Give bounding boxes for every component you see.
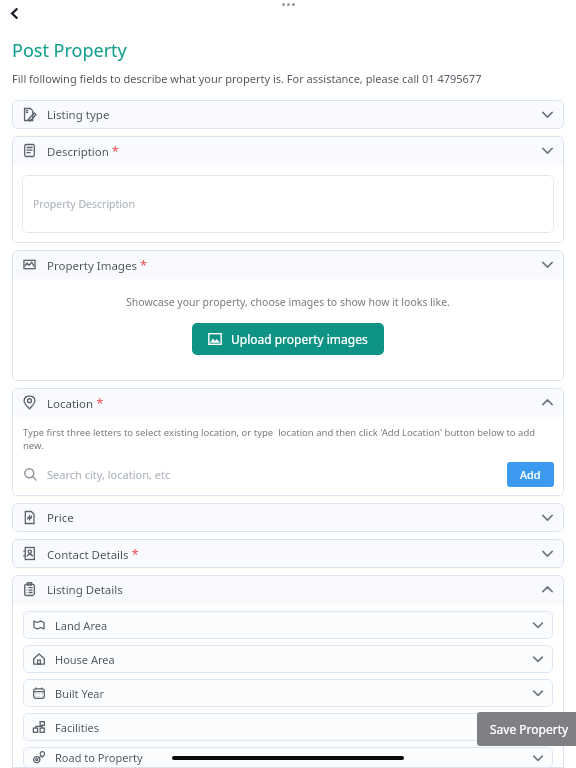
staticText: Property Images *: [47, 256, 148, 274]
button[interactable]: Save Property: [477, 712, 576, 746]
staticText: Contact Details *: [47, 545, 139, 563]
staticText: Description *: [47, 142, 120, 160]
button[interactable]: Add: [507, 462, 554, 487]
button[interactable]: Land Area: [23, 611, 553, 639]
button[interactable]: Property Images *: [12, 250, 564, 279]
staticText: Add: [520, 467, 541, 482]
staticText: Price: [47, 510, 74, 526]
button[interactable]: Price: [12, 503, 564, 532]
button[interactable]: Back: [0, 0, 28, 26]
staticText: Post Property: [12, 38, 127, 63]
button[interactable]: Built Year: [23, 679, 553, 707]
staticText: Location *: [47, 394, 104, 412]
staticText: Road to Property: [55, 750, 143, 765]
staticText: Listing Details: [47, 582, 123, 598]
staticText: Fill following fields to describe what y…: [12, 71, 482, 86]
button[interactable]: More options: [282, 3, 295, 6]
button[interactable]: Facilities: [23, 713, 553, 741]
staticText: Land Area: [55, 618, 108, 633]
button[interactable]: Property Description: [22, 175, 554, 233]
button[interactable]: Search city, location, etc: [23, 467, 507, 482]
button[interactable]: Listing type: [12, 100, 564, 129]
staticText: Type first three letters to select exist…: [23, 426, 553, 452]
button[interactable]: Contact Details *: [12, 539, 564, 568]
staticText: Showcase your property, choose images to…: [12, 295, 564, 309]
button[interactable]: Location *: [12, 388, 564, 417]
staticText: Property Description: [33, 197, 135, 211]
button[interactable]: Road to Property: [23, 747, 553, 768]
staticText: Save Property: [490, 721, 569, 737]
staticText: Search city, location, etc: [47, 467, 171, 482]
staticText: Facilities: [55, 720, 99, 735]
staticText: Built Year: [55, 686, 105, 701]
button[interactable]: Listing Details: [12, 575, 564, 604]
button[interactable]: Upload property images: [192, 323, 384, 355]
staticText: House Area: [55, 652, 115, 667]
button[interactable]: House Area: [23, 645, 553, 673]
staticText: Upload property images: [231, 331, 368, 347]
button[interactable]: Description *: [12, 136, 564, 165]
staticText: Listing type: [47, 107, 110, 123]
